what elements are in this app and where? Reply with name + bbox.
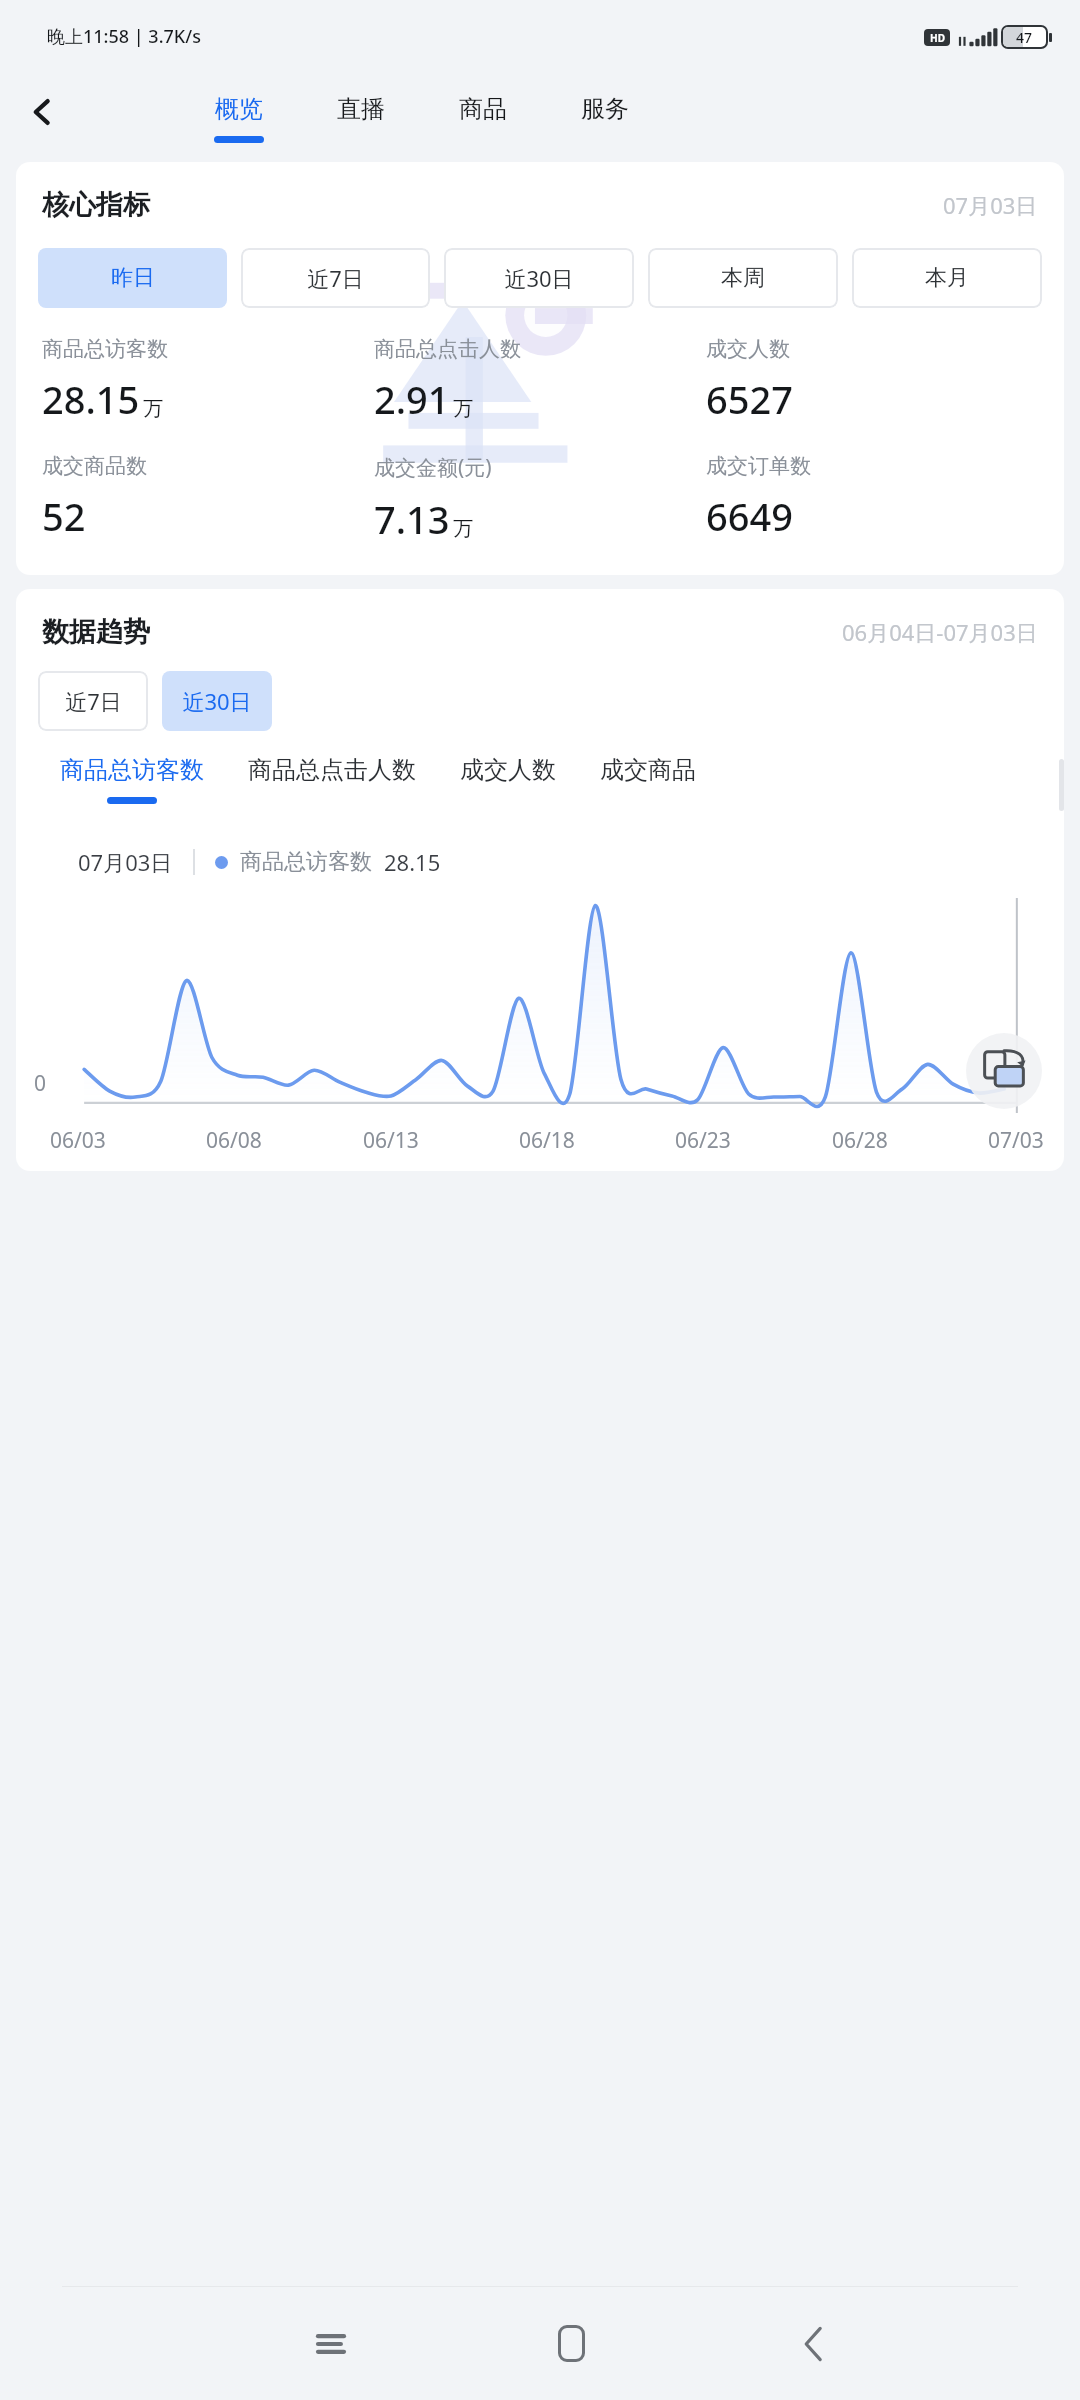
button[interactable]: Back bbox=[692, 2287, 933, 2400]
staticText: HD bbox=[930, 31, 945, 45]
button[interactable]: Home bbox=[451, 2287, 692, 2400]
button[interactable]: Rotate screen bbox=[966, 1033, 1042, 1109]
staticText: 成交人数 bbox=[706, 336, 790, 362]
staticText: 0 bbox=[34, 1069, 47, 1098]
staticText: 07/03 bbox=[988, 1126, 1044, 1155]
button[interactable]: 近7日 bbox=[38, 671, 148, 731]
staticText: 07月03日 bbox=[943, 190, 1038, 220]
staticText: 商品总点击人数 bbox=[248, 755, 416, 785]
staticText: 28.15 bbox=[42, 373, 140, 425]
staticText: 本月 bbox=[925, 264, 969, 292]
staticText: 47 bbox=[1016, 28, 1033, 47]
staticText: 06/13 bbox=[363, 1126, 419, 1155]
staticText: 6649 bbox=[706, 490, 793, 542]
staticText: 06月04日-07月03日 bbox=[842, 617, 1038, 647]
staticText: 服务 bbox=[581, 94, 629, 124]
staticText: 06/03 bbox=[50, 1126, 106, 1155]
staticText: 近30日 bbox=[182, 686, 252, 716]
staticText: 本周 bbox=[721, 264, 765, 292]
button[interactable]: 商品 bbox=[422, 73, 544, 150]
staticText: 06/23 bbox=[675, 1126, 731, 1155]
staticText: 07月03日 bbox=[78, 847, 173, 877]
staticText: 商品总访客数 bbox=[240, 848, 372, 876]
staticText: 数据趋势 bbox=[42, 615, 150, 649]
staticText: 成交人数 bbox=[460, 755, 556, 785]
staticText: 06/18 bbox=[519, 1126, 575, 1155]
staticText: 52 bbox=[42, 490, 86, 542]
button[interactable]: 本月 bbox=[852, 248, 1042, 308]
staticText: 成交订单数 bbox=[706, 453, 811, 479]
button[interactable]: 近7日 bbox=[241, 248, 430, 308]
button[interactable]: 概览 bbox=[178, 73, 300, 150]
staticText: 7.13 bbox=[374, 493, 450, 545]
staticText: 万 bbox=[453, 516, 473, 541]
button[interactable]: 成交商品 bbox=[578, 755, 718, 833]
button[interactable]: 商品总点击人数 bbox=[226, 755, 438, 833]
staticText: 万 bbox=[143, 396, 163, 421]
staticText: 直播 bbox=[337, 94, 385, 124]
staticText: 商品总访客数 bbox=[42, 336, 168, 362]
staticText: 近30日 bbox=[504, 263, 574, 293]
staticText: 成交金额(元) bbox=[374, 453, 492, 482]
staticText: 商品总访客数 bbox=[60, 755, 204, 785]
staticText: 成交商品数 bbox=[42, 453, 147, 479]
button[interactable]: 直播 bbox=[300, 73, 422, 150]
staticText: 商品 bbox=[459, 94, 507, 124]
staticText: 昨日 bbox=[111, 264, 155, 292]
staticText: 近7日 bbox=[307, 263, 364, 293]
button[interactable]: 近30日 bbox=[162, 671, 272, 731]
staticText: 商品总点击人数 bbox=[374, 336, 521, 362]
button[interactable]: 服务 bbox=[544, 73, 666, 150]
staticText: 06/28 bbox=[832, 1126, 888, 1155]
staticText: 核心指标 bbox=[42, 188, 150, 222]
button[interactable]: 近30日 bbox=[444, 248, 634, 308]
button[interactable]: 成交人数 bbox=[438, 755, 578, 833]
staticText: 成交商品 bbox=[600, 755, 696, 785]
staticText: 万 bbox=[453, 396, 473, 421]
button[interactable]: 商品总访客数 bbox=[38, 755, 226, 833]
staticText: 6527 bbox=[706, 373, 793, 425]
staticText: 2.91 bbox=[374, 373, 450, 425]
staticText: 晚上11:58 | 3.7K/s bbox=[47, 24, 201, 49]
staticText: 06/08 bbox=[206, 1126, 262, 1155]
button[interactable]: 昨日 bbox=[38, 248, 227, 308]
staticText: 近7日 bbox=[65, 686, 122, 716]
button[interactable]: 本周 bbox=[648, 248, 838, 308]
button[interactable]: Back bbox=[14, 83, 72, 141]
staticText: 28.15 bbox=[384, 847, 441, 877]
button[interactable]: Recent apps bbox=[210, 2287, 451, 2400]
staticText: 概览 bbox=[215, 94, 263, 124]
